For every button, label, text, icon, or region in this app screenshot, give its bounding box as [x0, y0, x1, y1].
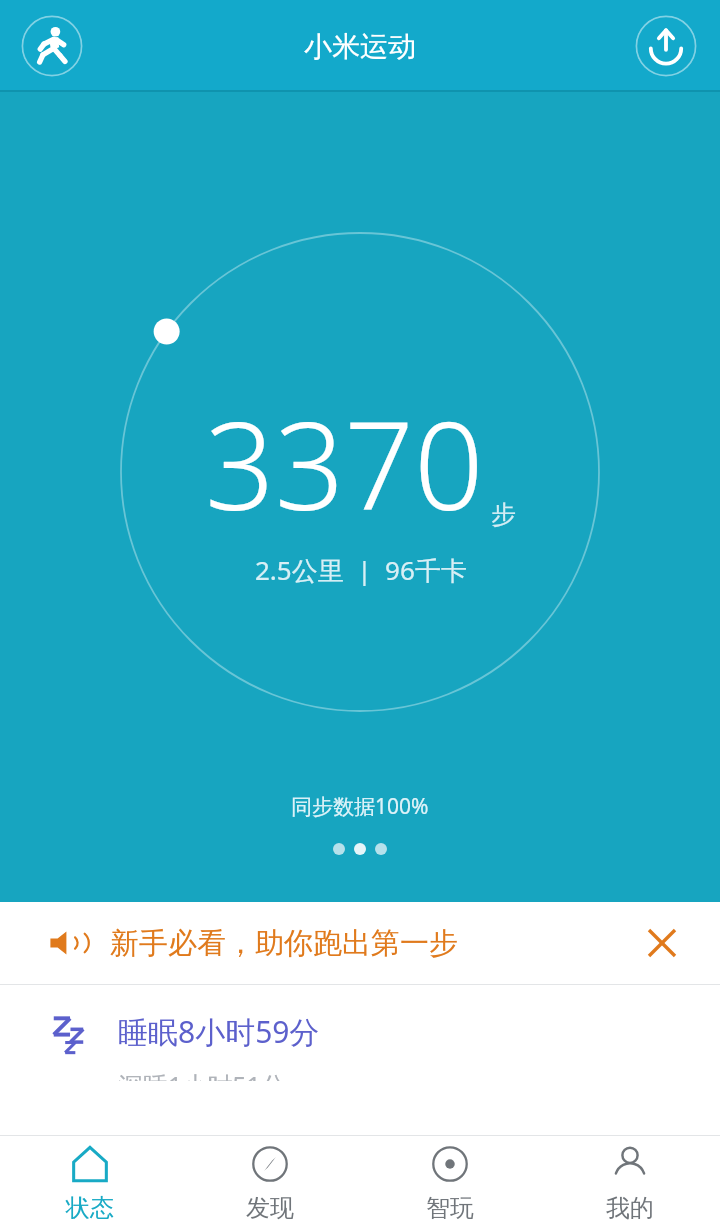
button[interactable]: Sync data — [635, 15, 697, 77]
button[interactable]: 睡眠8小时59分 — [0, 985, 720, 1081]
staticText: 2.5公里 | 96千卡 — [255, 552, 467, 588]
button[interactable]: 发现 — [180, 1136, 360, 1231]
staticText: 同步数据100% — [291, 792, 429, 821]
staticText: 步 — [491, 499, 516, 530]
staticText: 深睡1小时51分 — [118, 1068, 286, 1081]
staticText: 3370 — [205, 380, 484, 546]
staticText: 我的 — [606, 1193, 654, 1223]
button[interactable]: 状态 — [0, 1136, 180, 1231]
staticText: 发现 — [246, 1193, 294, 1223]
staticText: 小米运动 — [304, 29, 416, 64]
button[interactable]: 新手必看，助你跑出第一步 — [0, 902, 720, 984]
button[interactable]: 智玩 — [360, 1136, 540, 1231]
button[interactable]: Start running — [21, 15, 83, 77]
staticText: 新手必看，助你跑出第一步 — [110, 925, 458, 962]
button[interactable]: Dismiss — [630, 911, 694, 975]
staticText: 状态 — [66, 1193, 114, 1223]
button[interactable]: 我的 — [540, 1136, 720, 1231]
staticText: 睡眠8小时59分 — [118, 1011, 320, 1052]
staticText: 智玩 — [426, 1193, 474, 1223]
